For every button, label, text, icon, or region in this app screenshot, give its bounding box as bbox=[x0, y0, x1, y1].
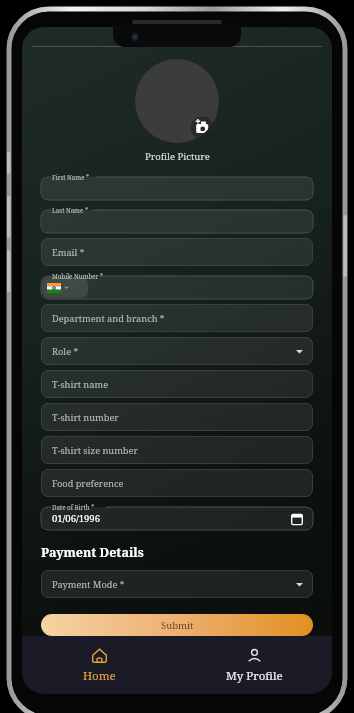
button[interactable]: Payment Mode * bbox=[41, 570, 313, 598]
staticText: 01/06/1996 bbox=[52, 512, 100, 525]
button[interactable]: T-shirt name bbox=[41, 370, 313, 398]
button[interactable]: First Name * bbox=[41, 172, 313, 200]
button[interactable]: Department and branch * bbox=[41, 304, 313, 332]
button[interactable]: My Profile bbox=[177, 641, 332, 690]
staticText: Date of Birth * bbox=[52, 503, 95, 511]
staticText: Email * bbox=[52, 246, 85, 259]
button[interactable]: Email * bbox=[41, 238, 313, 266]
staticText: Mobile Number * bbox=[52, 272, 104, 280]
button[interactable]: Submit bbox=[41, 614, 313, 636]
staticText: Profile Picture bbox=[145, 150, 210, 163]
button[interactable]: Home bbox=[22, 641, 177, 690]
staticText: My Profile bbox=[226, 668, 283, 684]
button[interactable]: Food preference bbox=[41, 469, 313, 497]
button[interactable]: Role * bbox=[41, 337, 313, 365]
button[interactable]: Select country code bbox=[47, 283, 61, 293]
staticText: Food preference bbox=[52, 477, 124, 490]
staticText: Department and branch * bbox=[52, 312, 165, 325]
button[interactable]: Change profile picture bbox=[135, 59, 219, 143]
staticText: Last Name * bbox=[52, 206, 88, 214]
button[interactable]: T-shirt number bbox=[41, 403, 313, 431]
staticText: Payment Mode * bbox=[52, 578, 125, 591]
staticText: T-shirt name bbox=[52, 378, 109, 391]
staticText: Role * bbox=[52, 345, 79, 358]
staticText: T-shirt size number bbox=[52, 444, 138, 457]
staticText: Submit bbox=[161, 619, 194, 632]
staticText: T-shirt number bbox=[52, 411, 119, 424]
button[interactable]: Mobile Number * bbox=[41, 271, 313, 299]
button[interactable]: Date of Birth * bbox=[41, 502, 313, 530]
button[interactable]: Last Name * bbox=[41, 205, 313, 233]
staticText: Home bbox=[83, 668, 116, 684]
button[interactable]: T-shirt size number bbox=[41, 436, 313, 464]
staticText: First Name * bbox=[52, 173, 90, 181]
staticText: Payment Details bbox=[41, 544, 144, 561]
button[interactable]: Pick date bbox=[290, 512, 304, 526]
